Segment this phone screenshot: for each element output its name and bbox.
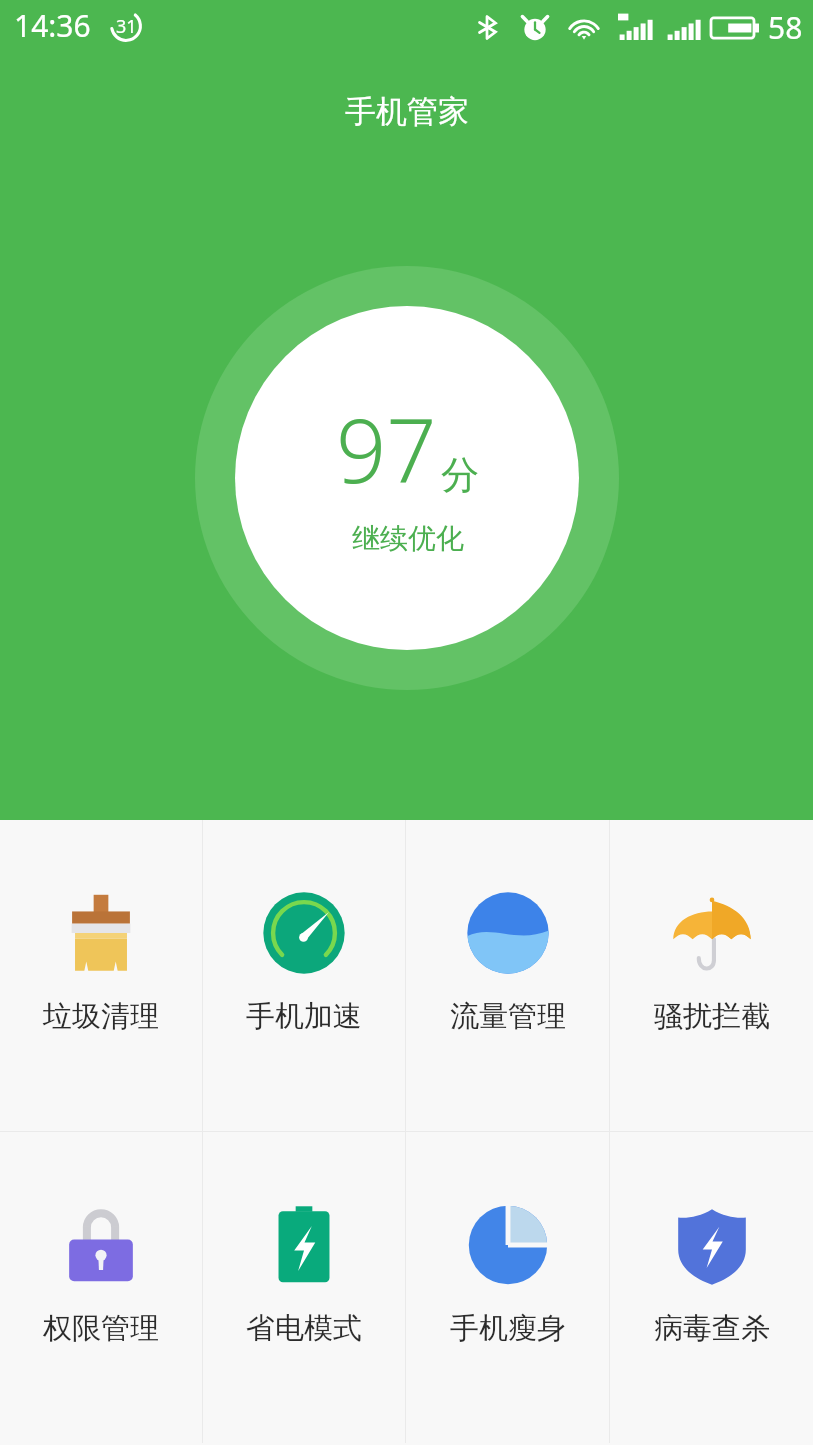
button[interactable]: 权限管理 <box>0 1132 202 1443</box>
button[interactable]: 手机加速 <box>203 820 405 1131</box>
staticText: 流量管理 <box>450 998 566 1035</box>
staticText: 权限管理 <box>43 1310 159 1347</box>
staticText: 97 <box>336 389 437 509</box>
button[interactable]: 骚扰拦截 <box>610 820 813 1131</box>
staticText: 手机加速 <box>246 998 362 1035</box>
staticText: 58 <box>768 7 803 48</box>
staticText: 31 <box>116 14 137 39</box>
button[interactable]: 继续优化 97 分 <box>195 266 619 690</box>
button[interactable]: 省电模式 <box>203 1132 405 1443</box>
staticText: 骚扰拦截 <box>654 998 770 1035</box>
staticText: 病毒查杀 <box>654 1310 770 1347</box>
staticText: 分 <box>441 451 479 499</box>
staticText: 省电模式 <box>246 1310 362 1347</box>
button[interactable]: 病毒查杀 <box>610 1132 813 1443</box>
staticText: 14:36 <box>14 5 91 46</box>
button[interactable]: 垃圾清理 <box>0 820 202 1131</box>
staticText: 垃圾清理 <box>43 998 159 1035</box>
staticText: 继续优化 <box>352 521 464 556</box>
button[interactable]: 手机瘦身 <box>406 1132 609 1443</box>
button[interactable]: 流量管理 <box>406 820 609 1131</box>
staticText: 手机管家 <box>345 92 469 131</box>
staticText: 手机瘦身 <box>450 1310 566 1347</box>
